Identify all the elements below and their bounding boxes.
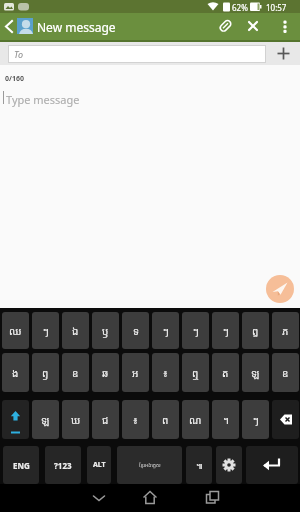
button[interactable]: ENG: [3, 446, 39, 484]
staticText: 62%: [232, 2, 248, 13]
button[interactable]: អ: [122, 353, 149, 392]
button[interactable]: [246, 446, 298, 484]
staticText: ឈ: [9, 324, 22, 338]
staticText: ៗ: [163, 324, 169, 338]
button[interactable]: [136, 484, 164, 512]
button[interactable]: ឭ: [32, 353, 59, 392]
button[interactable]: ៗ: [182, 312, 209, 349]
button[interactable]: ខ្មែរអង់គ្លេស: [117, 446, 182, 484]
staticText: ឧ: [282, 366, 289, 380]
staticText: ឫ: [102, 324, 109, 338]
button[interactable]: ឡ: [242, 353, 269, 392]
button[interactable]: ៕: [186, 446, 212, 484]
button[interactable]: [272, 400, 299, 439]
button[interactable]: ៗ: [32, 312, 59, 349]
button[interactable]: ជ: [92, 400, 119, 439]
button[interactable]: [216, 446, 242, 484]
staticText: ជ: [102, 413, 109, 427]
staticText: ឡ: [251, 366, 260, 380]
staticText: ភ: [282, 324, 289, 338]
button[interactable]: ភ: [272, 312, 299, 349]
staticText: ទ: [133, 324, 139, 338]
staticText: ៗ: [193, 324, 199, 338]
button[interactable]: [2, 400, 29, 439]
button[interactable]: ៗ: [242, 400, 269, 439]
staticText: ALT: [93, 460, 106, 470]
button[interactable]: ឡ: [32, 400, 59, 439]
staticText: ឧ: [72, 366, 79, 380]
staticText: Type message: [6, 92, 80, 107]
button[interactable]: ណ: [182, 400, 209, 439]
button[interactable]: ឰ: [242, 312, 269, 349]
staticText: ៗ: [43, 324, 49, 338]
staticText: ឆ: [102, 366, 109, 380]
staticText: ឭ: [42, 366, 49, 380]
staticText: ព: [162, 413, 169, 427]
button[interactable]: [199, 484, 227, 512]
staticText: ៗ: [253, 413, 259, 427]
staticText: ៕: [196, 459, 203, 471]
button[interactable]: ឫ: [92, 312, 119, 349]
button[interactable]: ឈ: [2, 312, 29, 349]
button[interactable]: ទ: [122, 312, 149, 349]
button[interactable]: ឃ: [62, 400, 89, 439]
staticText: 10:57: [266, 2, 287, 13]
staticText: ខ្មែរអង់គ្លេស: [139, 462, 161, 469]
staticText: ៗ: [223, 324, 229, 338]
staticText: To: [14, 48, 23, 60]
staticText: ?123: [54, 460, 72, 471]
button[interactable]: ៖: [152, 353, 179, 392]
staticText: ឰ: [252, 324, 259, 338]
staticText: 0/160: [5, 74, 24, 84]
staticText: ឯ: [72, 324, 79, 338]
staticText: ឮ: [192, 366, 200, 380]
staticText: ត: [222, 366, 229, 380]
staticText: New message: [37, 19, 116, 35]
button[interactable]: To: [8, 45, 266, 63]
button[interactable]: [215, 16, 235, 36]
button[interactable]: ព: [152, 400, 179, 439]
staticText: ណ: [189, 413, 202, 427]
button[interactable]: ?123: [45, 446, 81, 484]
button[interactable]: ង: [2, 353, 29, 392]
button[interactable]: ។: [212, 400, 239, 439]
button[interactable]: [243, 16, 263, 36]
button[interactable]: ឮ: [182, 353, 209, 392]
button[interactable]: ត: [212, 353, 239, 392]
button[interactable]: ឆ: [92, 353, 119, 392]
button[interactable]: ALT: [87, 446, 111, 484]
button[interactable]: [85, 484, 113, 512]
button[interactable]: [276, 13, 294, 40]
staticText: អ: [132, 366, 139, 380]
button[interactable]: ៖: [122, 400, 149, 439]
button[interactable]: ៗ: [212, 312, 239, 349]
button[interactable]: [266, 275, 294, 303]
button[interactable]: ឯ: [62, 312, 89, 349]
button[interactable]: ឧ: [62, 353, 89, 392]
button[interactable]: ឧ: [272, 353, 299, 392]
button[interactable]: [0, 13, 16, 40]
staticText: ឡ: [41, 413, 50, 427]
button[interactable]: [268, 42, 298, 65]
staticText: ង: [12, 366, 19, 380]
staticText: ។: [223, 413, 229, 427]
staticText: ៖: [133, 413, 138, 427]
staticText: ENG: [13, 460, 30, 471]
staticText: ឃ: [71, 413, 81, 427]
staticText: ៖: [163, 366, 168, 380]
button[interactable]: ៗ: [152, 312, 179, 349]
